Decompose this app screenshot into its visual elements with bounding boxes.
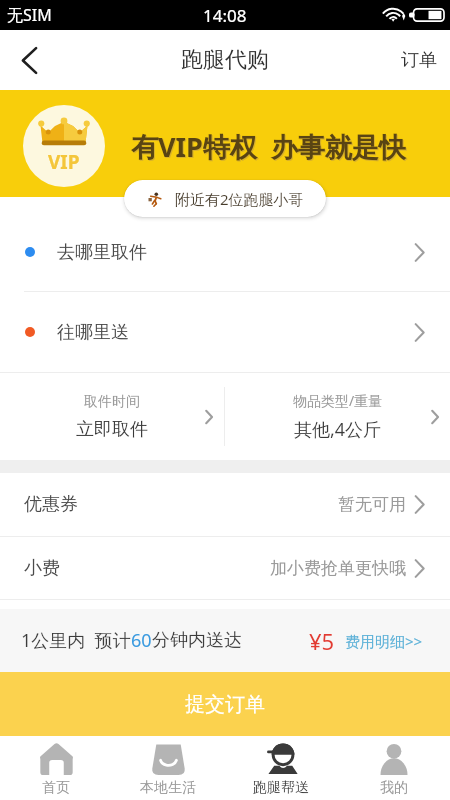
staticText: 分钟内送达 bbox=[152, 629, 242, 652]
staticText: 跑腿帮送 bbox=[253, 779, 309, 797]
staticText: 小费 bbox=[24, 557, 60, 580]
button[interactable]: 取件时间 bbox=[0, 373, 224, 460]
staticText: 有VIP特权 办事就是快 bbox=[131, 128, 406, 165]
button[interactable]: 物品类型/重量 bbox=[225, 373, 450, 460]
staticText: 取件时间 bbox=[84, 393, 140, 411]
button[interactable]: 往哪里送 bbox=[0, 292, 450, 372]
staticText: 其他,4公斤 bbox=[294, 417, 382, 442]
staticText: 订单 bbox=[401, 49, 437, 72]
staticText: 60 bbox=[131, 628, 152, 653]
staticText: VIP bbox=[48, 149, 80, 175]
button[interactable]: 我的 bbox=[337, 736, 450, 800]
button[interactable]: 首页 bbox=[0, 736, 112, 800]
staticText: ¥5 bbox=[309, 626, 335, 656]
button[interactable]: 小费 bbox=[0, 537, 450, 599]
staticText: 立即取件 bbox=[76, 418, 148, 441]
button[interactable]: 跑腿帮送 bbox=[224, 736, 337, 800]
staticText: 优惠券 bbox=[24, 493, 78, 516]
staticText: 提交订单 bbox=[185, 692, 265, 717]
button[interactable]: 本地生活 bbox=[112, 736, 224, 800]
staticText: 无SIM bbox=[7, 4, 52, 26]
button[interactable]: 费用明细>> bbox=[345, 631, 423, 651]
button[interactable]: 提交订单 bbox=[0, 672, 450, 736]
staticText: 费用明细>> bbox=[345, 631, 423, 651]
button[interactable]: 附近有2位跑腿小哥 bbox=[124, 180, 326, 217]
button[interactable]: 订单 bbox=[385, 35, 450, 86]
staticText: 我的 bbox=[380, 779, 408, 797]
staticText: 本地生活 bbox=[140, 779, 196, 797]
staticText: 附近有2位跑腿小哥 bbox=[175, 189, 304, 209]
staticText: 首页 bbox=[42, 779, 70, 797]
staticText: 有VIP特权 办事就是快 bbox=[132, 129, 407, 166]
staticText: 往哪里送 bbox=[57, 321, 129, 344]
staticText: 暂无可用 bbox=[338, 494, 406, 515]
staticText: 跑腿代购 bbox=[181, 46, 269, 74]
button[interactable]: 优惠券 bbox=[0, 473, 450, 536]
staticText: 物品类型/重量 bbox=[293, 391, 383, 410]
staticText: 1公里内 预计 bbox=[21, 628, 131, 653]
staticText: 加小费抢单更快哦 bbox=[270, 558, 406, 579]
staticText: 去哪里取件 bbox=[57, 241, 147, 264]
staticText: 14:08 bbox=[203, 4, 247, 27]
button[interactable]: 去哪里取件 bbox=[0, 213, 450, 291]
button[interactable]: Back bbox=[0, 31, 58, 89]
